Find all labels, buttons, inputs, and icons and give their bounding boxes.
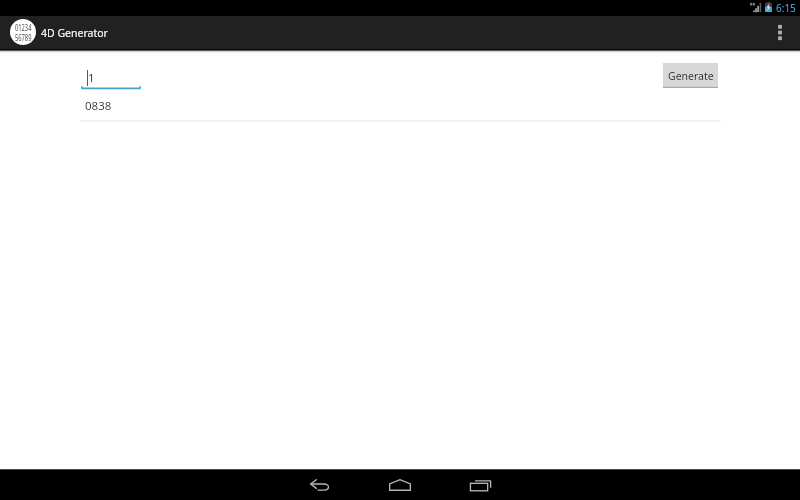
staticText: 4D Generator bbox=[41, 26, 108, 40]
button[interactable]: Generate bbox=[663, 63, 718, 88]
staticText: 1 bbox=[88, 70, 95, 86]
button[interactable]: Back bbox=[290, 470, 350, 500]
button[interactable]: More options bbox=[758, 16, 800, 49]
button[interactable]: Number of sets input bbox=[81, 63, 141, 90]
staticText: 01234 bbox=[15, 22, 32, 34]
staticText: Generate bbox=[668, 69, 714, 83]
staticText: 56789 bbox=[15, 32, 32, 42]
staticText: 0838 bbox=[85, 98, 112, 114]
button[interactable]: Recent apps bbox=[450, 470, 510, 500]
staticText: 6:15 bbox=[776, 1, 796, 15]
button[interactable]: Home bbox=[370, 470, 430, 500]
